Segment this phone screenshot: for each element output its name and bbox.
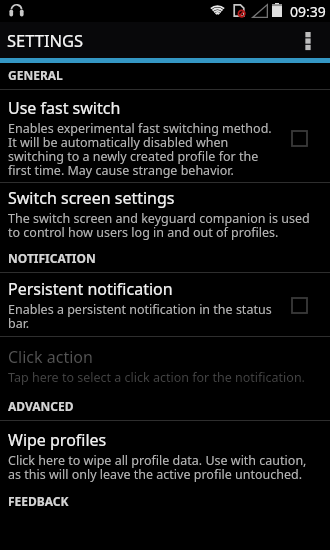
staticText: Use fast switch: [8, 97, 121, 119]
staticText: SETTINGS: [7, 29, 84, 51]
staticText: NOTIFICATION: [8, 250, 96, 266]
staticText: Click action: [8, 346, 93, 368]
staticText: Tap here to select a click action for th…: [8, 369, 305, 386]
button[interactable]: Toggle: [276, 118, 322, 158]
button[interactable]: Click action: [0, 337, 330, 393]
button[interactable]: More options: [294, 22, 330, 58]
staticText: Switch screen settings: [8, 187, 175, 209]
staticText: 09:39: [290, 2, 326, 21]
staticText: Click here to wipe all profile data. Use…: [8, 452, 310, 483]
button[interactable]: Toggle: [276, 285, 322, 325]
staticText: ADVANCED: [8, 398, 74, 414]
staticText: Enables a persistent notification in the…: [8, 301, 276, 332]
button[interactable]: Use fast switch: [0, 90, 330, 182]
staticText: Wipe profiles: [8, 429, 107, 451]
button[interactable]: Switch screen settings: [0, 183, 330, 245]
button[interactable]: Wipe profiles: [0, 421, 330, 488]
button[interactable]: Persistent notification: [0, 273, 330, 336]
staticText: Enables experimental fast switching meth…: [8, 120, 276, 179]
staticText: GENERAL: [8, 67, 63, 83]
staticText: The switch screen and keyguard companion…: [8, 210, 310, 241]
staticText: Persistent notification: [8, 278, 173, 300]
staticText: FEEDBACK: [8, 493, 69, 509]
